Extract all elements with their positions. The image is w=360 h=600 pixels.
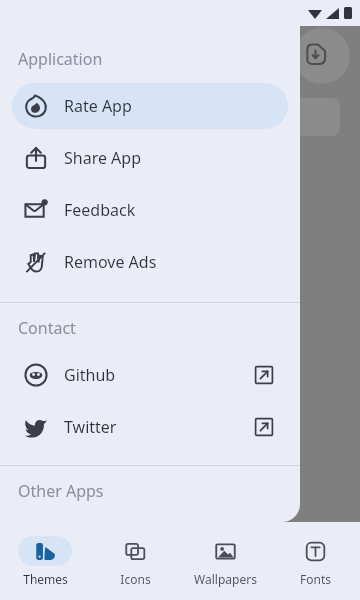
button[interactable]: Download [304, 42, 328, 66]
staticText: Icons [120, 571, 151, 587]
staticText: Application [18, 48, 103, 70]
button[interactable]: Remove Ads [12, 239, 288, 285]
staticText: Twitter [64, 416, 117, 438]
staticText: Github [64, 364, 116, 386]
staticText: Wallpapers [194, 571, 257, 587]
staticText: Remove Ads [64, 251, 157, 273]
staticText: Feedback [64, 199, 136, 221]
staticText: Contact [18, 317, 76, 339]
button[interactable]: Wallpapers [180, 522, 270, 600]
staticText: Fonts [300, 571, 331, 587]
button[interactable]: Share App [12, 135, 288, 181]
staticText: Other Apps [18, 480, 104, 502]
button[interactable]: Rate App [12, 83, 288, 129]
staticText: Share App [64, 147, 142, 169]
button[interactable]: Feedback [12, 187, 288, 233]
staticText: Themes [23, 571, 68, 587]
button[interactable]: Icons [90, 522, 180, 600]
button[interactable]: Themes [0, 522, 90, 600]
button[interactable]: Github [12, 352, 288, 398]
button[interactable]: Twitter [12, 404, 288, 450]
button[interactable]: Fonts [270, 522, 360, 600]
staticText: Rate App [64, 95, 132, 117]
